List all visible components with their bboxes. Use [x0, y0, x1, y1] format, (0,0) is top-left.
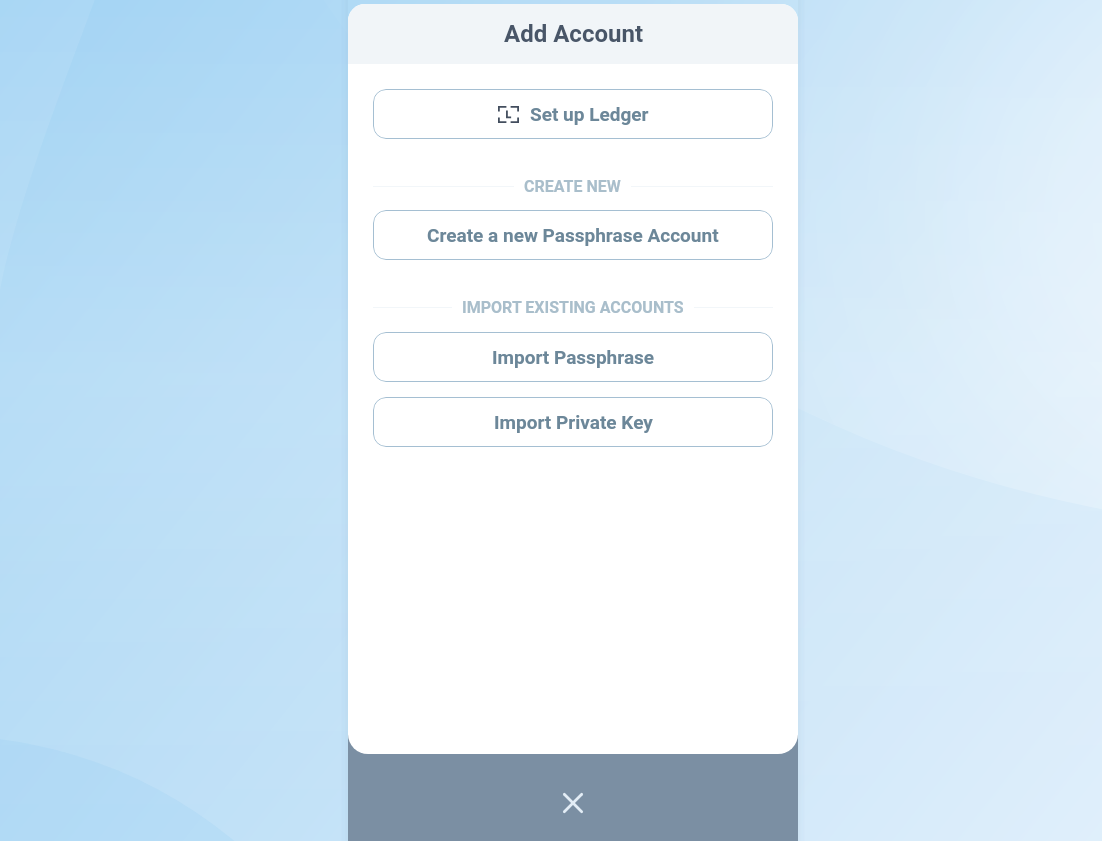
staticText: Import Private Key	[494, 411, 653, 433]
staticText: Add Account	[504, 20, 643, 48]
button[interactable]: Close	[551, 781, 595, 825]
staticText: CREATE NEW	[524, 177, 621, 196]
button[interactable]: Import Passphrase	[373, 332, 773, 382]
staticText: Create a new Passphrase Account	[427, 224, 719, 246]
staticText: Import Passphrase	[492, 346, 655, 368]
staticText: Set up Ledger	[530, 103, 649, 125]
button[interactable]: Create a new Passphrase Account	[373, 210, 773, 260]
staticText: IMPORT EXISTING ACCOUNTS	[462, 298, 684, 317]
button[interactable]: Set up Ledger	[373, 89, 773, 139]
button[interactable]: Import Private Key	[373, 397, 773, 447]
